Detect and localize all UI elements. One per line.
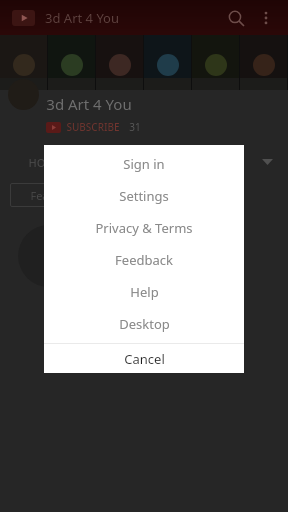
button[interactable]: Settings	[44, 180, 244, 212]
button[interactable]: Search	[220, 2, 252, 34]
button[interactable]: Privacy & Terms	[44, 212, 244, 244]
staticText: Sign in	[123, 155, 165, 173]
button[interactable]: Desktop	[44, 308, 244, 340]
button[interactable]: Channel avatar	[8, 79, 39, 110]
staticText: Feedback	[115, 251, 173, 269]
staticText: HOME	[28, 155, 62, 170]
staticText: Desktop	[119, 315, 170, 333]
staticText: Privacy & Terms	[95, 219, 193, 237]
staticText: Help	[130, 283, 159, 301]
button[interactable]: More options	[252, 4, 280, 32]
staticText: Cancel	[124, 350, 165, 368]
staticText: 3d Art 4 You	[46, 94, 132, 114]
staticText: 31	[129, 120, 141, 134]
button[interactable]: Feedback	[44, 244, 244, 276]
button[interactable]: Sign in	[44, 148, 244, 180]
button[interactable]: SUBSCRIBE	[46, 120, 141, 134]
button[interactable]: Cancel	[44, 344, 244, 373]
button[interactable]: Expand sections	[254, 149, 280, 175]
staticText: 3d Art 4 You	[45, 9, 119, 27]
staticText: SUBSCRIBE	[66, 120, 120, 134]
staticText: Settings	[119, 187, 169, 205]
staticText: Featured	[30, 188, 77, 203]
button[interactable]: Featured	[10, 183, 96, 207]
button[interactable]: Help	[44, 276, 244, 308]
button[interactable]: Play video	[18, 225, 80, 287]
